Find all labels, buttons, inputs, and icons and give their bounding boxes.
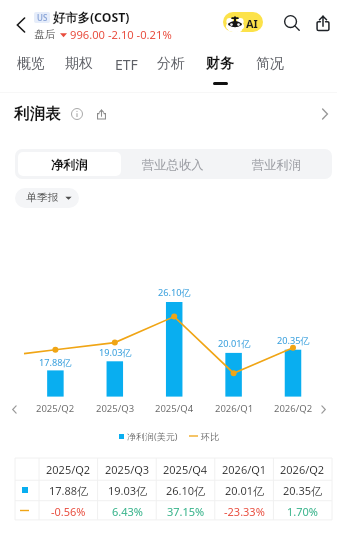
staticText: 2025/Q3 (96, 402, 135, 415)
staticText: 2026/Q1 (222, 462, 267, 477)
staticText: 26.10亿 (166, 483, 206, 498)
staticText: 2025/Q3 (105, 462, 150, 477)
staticText: 17.88亿 (39, 356, 72, 369)
staticText: -0.56% (51, 504, 86, 519)
staticText: 营业利润 (252, 157, 302, 172)
button[interactable]: 简况 (246, 55, 294, 77)
staticText: 利润表 (14, 104, 61, 124)
staticText: 2025/Q4 (155, 402, 194, 415)
button[interactable]: 净利润 (18, 152, 121, 176)
staticText: 20.01亿 (225, 483, 265, 498)
button[interactable]: Previous (6, 401, 22, 417)
staticText: 分析 (157, 55, 185, 73)
staticText: 6.43% (112, 504, 143, 519)
staticText: 环比 (201, 431, 219, 442)
staticText: 2025/Q2 (36, 402, 75, 415)
staticText: 期权 (65, 55, 93, 73)
staticText: 19.03亿 (99, 346, 132, 359)
staticText: 20.01亿 (218, 337, 251, 350)
button[interactable]: Next (315, 401, 331, 417)
button[interactable]: 营业利润 (225, 152, 329, 176)
staticText: 营业总收入 (142, 157, 204, 172)
button[interactable]: 单季报 (15, 188, 79, 208)
button[interactable]: AI (223, 12, 263, 32)
staticText: US (37, 12, 48, 23)
staticText: 概览 (17, 55, 45, 73)
button[interactable]: 期权 (55, 55, 103, 77)
staticText: 简况 (256, 55, 284, 73)
staticText: 17.88亿 (49, 483, 89, 498)
button[interactable]: 营业总收入 (121, 152, 225, 176)
button[interactable]: Share (311, 11, 335, 35)
button[interactable]: ETF (102, 55, 150, 77)
staticText: 净利润 (51, 157, 88, 172)
staticText: 净利润(美元) (127, 430, 178, 442)
staticText: -23.33% (224, 504, 265, 519)
staticText: 单季报 (26, 191, 59, 205)
staticText: 1.70% (287, 504, 318, 519)
staticText: 财务 (206, 55, 234, 73)
staticText: AI (246, 16, 258, 31)
staticText: 2025/Q2 (46, 462, 91, 477)
staticText: 20.35亿 (283, 483, 323, 498)
button[interactable]: 利润表 (14, 99, 328, 129)
button[interactable]: 财务 (196, 55, 244, 77)
staticText: ETF (115, 55, 138, 74)
button[interactable]: 分析 (147, 55, 195, 77)
staticText: 37.15% (167, 504, 205, 519)
staticText: 2026/Q2 (274, 402, 313, 415)
staticText: 996.00 -2.10 -0.21% (70, 27, 172, 42)
staticText: 19.03亿 (108, 483, 148, 498)
staticText: 盘后 (34, 28, 56, 42)
button[interactable]: Back (8, 12, 33, 37)
button[interactable]: Search (280, 11, 304, 35)
staticText: 2026/Q2 (280, 462, 325, 477)
staticText: 2025/Q4 (163, 462, 208, 477)
button[interactable]: 概览 (7, 55, 55, 77)
staticText: 26.10亿 (158, 286, 191, 299)
staticText: 好市多(COST) (53, 9, 130, 26)
staticText: 2026/Q1 (215, 402, 254, 415)
staticText: 20.35亿 (277, 334, 310, 347)
